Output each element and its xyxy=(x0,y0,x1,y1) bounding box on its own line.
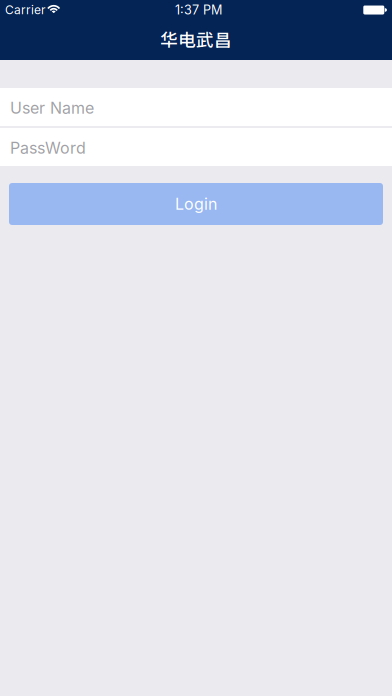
staticText: Carrier xyxy=(5,3,46,17)
staticText: Login xyxy=(175,194,217,214)
staticText: User Name xyxy=(10,98,94,118)
staticText: 1:37 PM xyxy=(175,2,222,18)
staticText: PassWord xyxy=(10,138,86,158)
staticText: 华电武昌 xyxy=(160,26,232,52)
button[interactable]: PassWord xyxy=(0,128,392,166)
button[interactable]: Login xyxy=(9,183,383,225)
button[interactable]: User Name xyxy=(0,88,392,126)
